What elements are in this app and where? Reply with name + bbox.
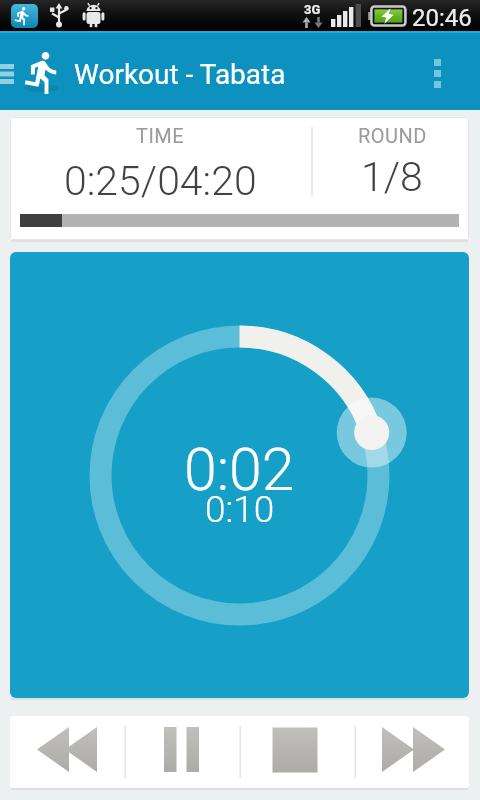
staticText: Workout - Tabata: [74, 58, 286, 91]
staticText: 1/8: [361, 153, 423, 201]
button[interactable]: [0, 53, 20, 95]
staticText: 20:46: [412, 4, 472, 32]
staticText: ROUND: [358, 124, 427, 146]
staticText: TIME: [136, 124, 185, 146]
staticText: 0:02: [184, 435, 295, 504]
button[interactable]: [10, 716, 124, 788]
staticText: 0:25/04:20: [64, 157, 257, 205]
staticText: 3G: [304, 2, 321, 17]
button[interactable]: [354, 716, 469, 788]
button[interactable]: [239, 716, 354, 788]
button[interactable]: [414, 48, 461, 99]
button[interactable]: [124, 716, 239, 788]
staticText: 0:10: [205, 488, 275, 531]
